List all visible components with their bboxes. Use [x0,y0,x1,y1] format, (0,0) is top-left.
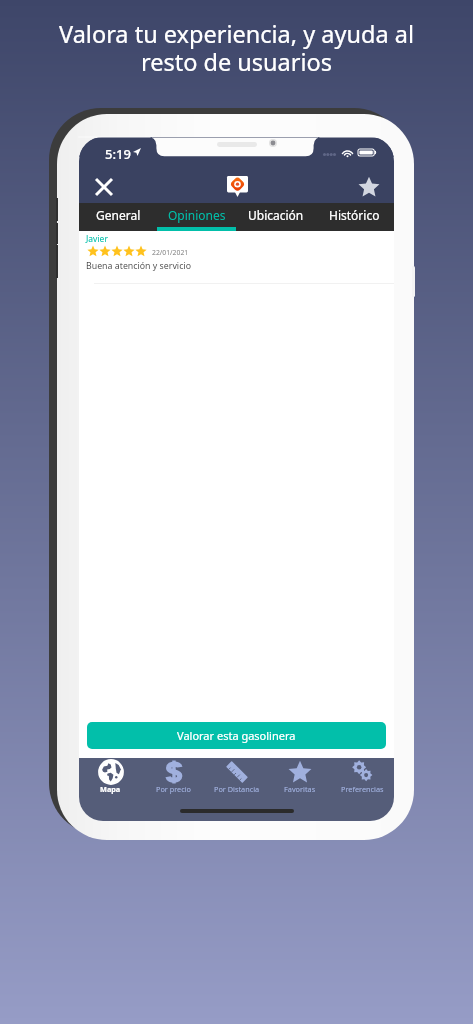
button[interactable]: Favorito [353,171,385,203]
button[interactable]: Valorar esta gasolinera [87,722,386,749]
button[interactable]: Favoritas [268,758,331,821]
staticText: Mapa [100,784,121,794]
staticText: Por Distancia [214,784,260,794]
button[interactable]: General [79,203,157,231]
button[interactable]: Cerrar [88,171,120,203]
staticText: 22/01/2021 [152,248,189,257]
button[interactable]: Histórico [315,203,394,231]
staticText: Ubicación [248,207,304,223]
staticText: Opiniones [168,207,226,223]
staticText: Javier [86,233,108,245]
button[interactable]: Preferencias [331,758,394,821]
staticText: General [96,207,141,223]
staticText: Buena atención y servicio [86,260,191,272]
staticText: Histórico [329,207,380,223]
staticText: Por precio [156,784,192,794]
button[interactable]: Por Distancia [205,758,268,821]
button[interactable]: Ubicación [236,203,315,231]
staticText: Preferencias [341,784,384,794]
staticText: Valora tu experiencia, y ayuda al resto … [0,18,473,78]
button[interactable]: Opiniones [157,203,236,231]
button[interactable]: Mapa [79,758,142,821]
staticText: Valorar esta gasolinera [177,728,296,743]
staticText: Favoritas [284,784,316,794]
button[interactable]: Por precio [142,758,205,821]
staticText: 5:19 [105,145,131,163]
